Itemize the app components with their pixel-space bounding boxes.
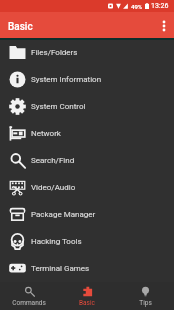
staticText: Basic: [8, 21, 33, 33]
button[interactable]: Network: [0, 120, 174, 147]
staticText: Commands: [12, 299, 46, 307]
staticText: 13:26: [151, 2, 169, 10]
staticText: Network: [31, 129, 61, 138]
staticText: Terminal Games: [31, 264, 90, 273]
staticText: System Control: [31, 102, 86, 111]
button[interactable]: Tips: [116, 282, 174, 310]
staticText: Package Manager: [31, 210, 96, 219]
staticText: 49%: [131, 3, 143, 10]
button[interactable]: Basic: [58, 282, 116, 310]
button[interactable]: Package Manager: [0, 201, 174, 228]
button[interactable]: More options: [154, 12, 174, 39]
button[interactable]: Hacking Tools: [0, 228, 174, 255]
button[interactable]: Files/Folders: [0, 39, 174, 66]
button[interactable]: System Control: [0, 93, 174, 120]
button[interactable]: Video/Audio: [0, 174, 174, 201]
button[interactable]: Commands: [0, 282, 58, 310]
staticText: Basic: [79, 299, 95, 307]
staticText: Files/Folders: [31, 48, 78, 57]
button[interactable]: System Information: [0, 66, 174, 93]
staticText: Search/Find: [31, 156, 75, 165]
button[interactable]: Terminal Games: [0, 255, 174, 282]
staticText: Tips: [139, 299, 152, 307]
staticText: Hacking Tools: [31, 237, 82, 246]
staticText: Video/Audio: [31, 183, 76, 192]
staticText: System Information: [31, 75, 102, 84]
button[interactable]: Search/Find: [0, 147, 174, 174]
